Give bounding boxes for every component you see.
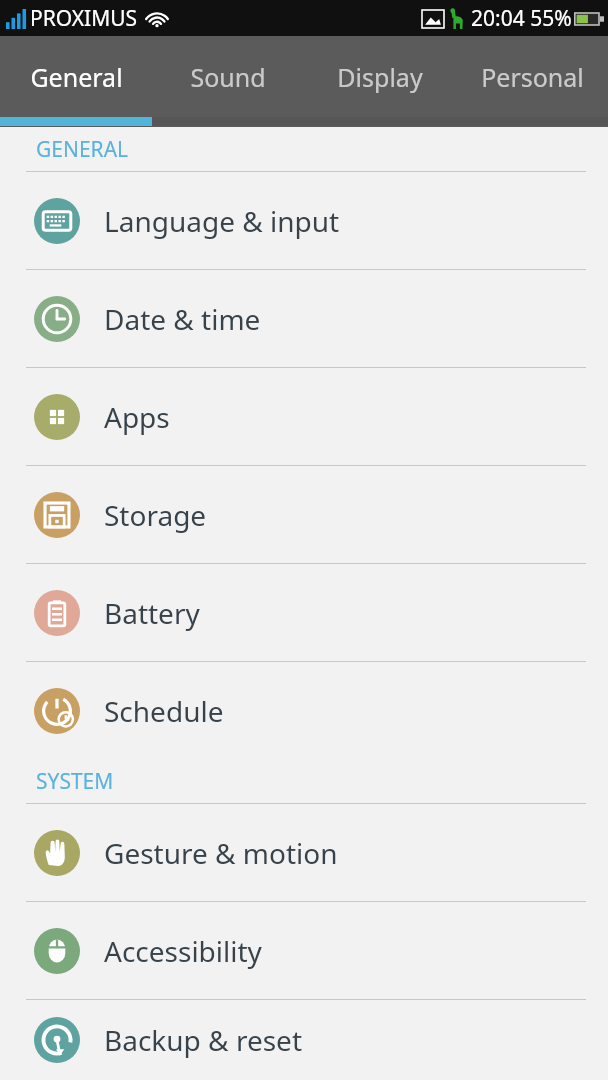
button[interactable]: General bbox=[0, 36, 152, 117]
staticText: Schedule bbox=[104, 692, 224, 730]
staticText: Backup & reset bbox=[104, 1021, 302, 1059]
staticText: Sound bbox=[190, 60, 266, 94]
staticText: Accessibility bbox=[104, 932, 262, 970]
staticText: Display bbox=[337, 60, 423, 94]
button[interactable]: Gesture & motion bbox=[0, 804, 608, 901]
staticText: Personal bbox=[481, 60, 584, 94]
button[interactable]: Apps bbox=[0, 368, 608, 465]
button[interactable]: Sound bbox=[152, 36, 304, 117]
staticText: Apps bbox=[104, 398, 170, 436]
button[interactable]: Battery bbox=[0, 564, 608, 661]
button[interactable]: Storage bbox=[0, 466, 608, 563]
button[interactable]: Schedule bbox=[0, 662, 608, 759]
staticText: Battery bbox=[104, 594, 200, 632]
staticText: Gesture & motion bbox=[104, 834, 338, 872]
button[interactable]: Language & input bbox=[0, 172, 608, 269]
staticText: Storage bbox=[104, 496, 207, 534]
staticText: 20:04 55% bbox=[471, 4, 572, 33]
staticText: General bbox=[30, 60, 123, 94]
button[interactable]: Date & time bbox=[0, 270, 608, 367]
staticText: PROXIMUS bbox=[30, 4, 138, 33]
staticText: SYSTEM bbox=[36, 767, 114, 796]
staticText: Date & time bbox=[104, 300, 261, 338]
staticText: GENERAL bbox=[36, 135, 129, 164]
button[interactable]: Accessibility bbox=[0, 902, 608, 999]
button[interactable]: Display bbox=[304, 36, 456, 117]
button[interactable]: Personal bbox=[456, 36, 608, 117]
staticText: Language & input bbox=[104, 202, 340, 240]
button[interactable]: Backup & reset bbox=[0, 1000, 608, 1080]
